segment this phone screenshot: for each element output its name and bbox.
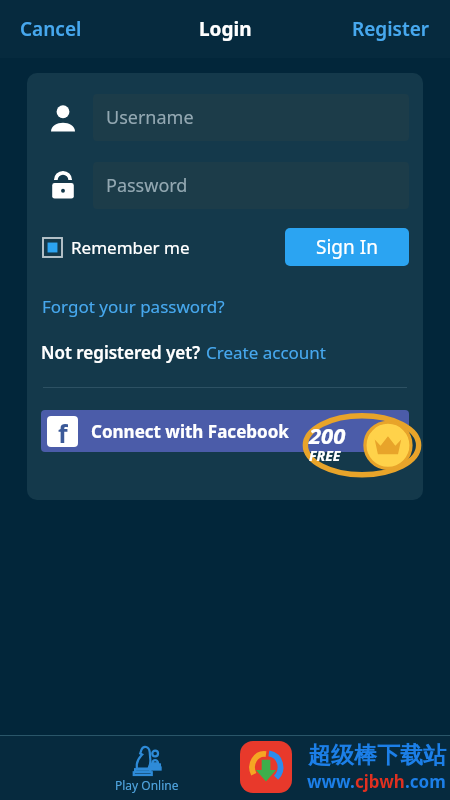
staticText: Not registered yet?	[41, 341, 205, 364]
staticText: Play Online	[115, 777, 179, 793]
staticText: Login	[199, 16, 252, 42]
staticText: Username	[106, 105, 194, 130]
staticText: Connect with Facebook	[91, 420, 289, 443]
staticText: FREE	[309, 446, 341, 465]
button[interactable]: Register	[338, 8, 444, 50]
staticText: Register	[352, 16, 430, 42]
button[interactable]: Forgot your password?	[41, 292, 226, 321]
button[interactable]: Username	[93, 94, 409, 141]
button[interactable]: Play Online	[105, 738, 189, 797]
staticText: cjbwh	[355, 770, 405, 793]
staticText: .com	[405, 770, 446, 793]
button[interactable]: Remember me	[41, 230, 192, 265]
button[interactable]: Create account	[205, 338, 327, 367]
staticText: www.	[307, 770, 355, 793]
button[interactable]: Password	[93, 162, 409, 209]
staticText: Sign In	[316, 234, 378, 260]
staticText: Forgot your password?	[42, 295, 225, 318]
staticText: 200	[309, 420, 346, 450]
button[interactable]: Cancel	[6, 8, 96, 50]
staticText: f	[58, 416, 68, 445]
staticText: Password	[106, 173, 188, 198]
staticText: Create account	[206, 341, 326, 364]
button[interactable]: Sign In	[285, 228, 409, 266]
staticText: Cancel	[20, 16, 82, 42]
staticText: Remember me	[71, 236, 190, 259]
staticText: 超级棒下载站	[308, 741, 446, 770]
button[interactable]: f	[41, 410, 409, 452]
